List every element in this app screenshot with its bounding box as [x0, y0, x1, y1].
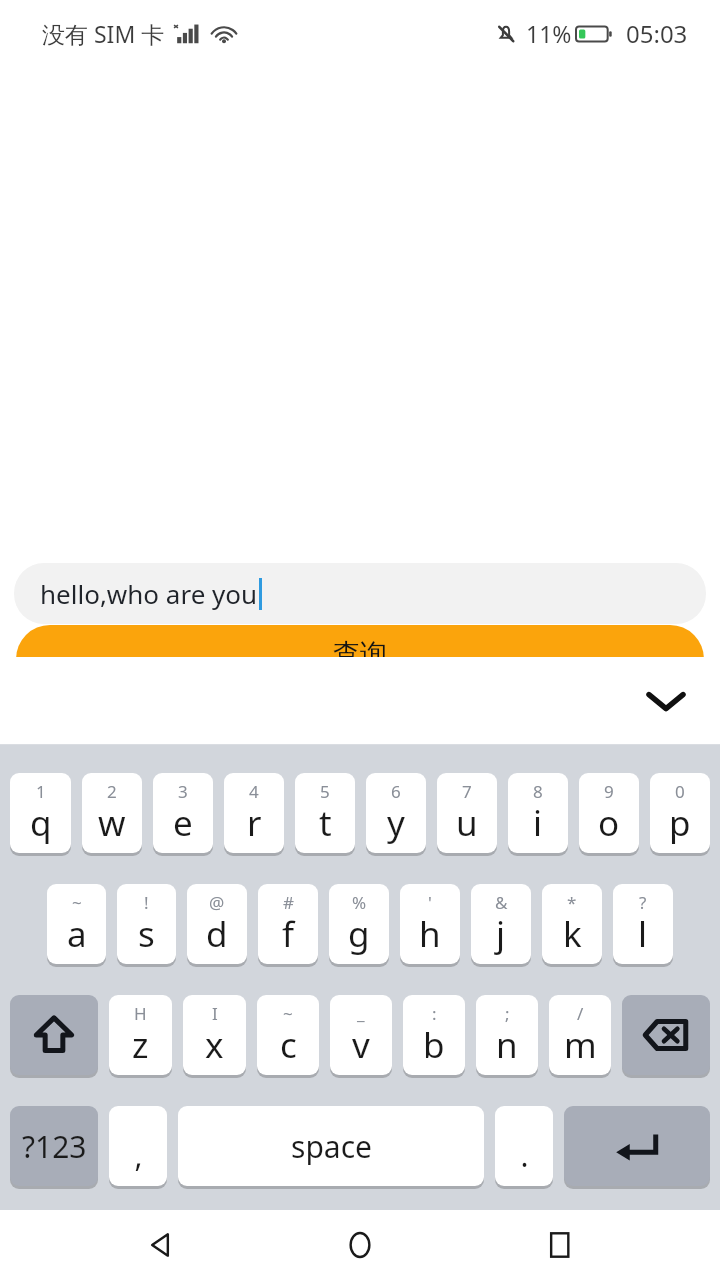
button[interactable]: 8	[508, 773, 568, 853]
button[interactable]: *	[542, 884, 602, 964]
button[interactable]: _	[330, 995, 392, 1075]
button[interactable]: Home	[320, 1210, 400, 1280]
staticText: s	[138, 910, 155, 958]
staticText: _	[357, 1002, 365, 1025]
staticText: I	[212, 1002, 218, 1025]
staticText: k	[563, 910, 582, 958]
staticText: r	[247, 799, 262, 847]
staticText: ?123	[22, 1126, 87, 1167]
button[interactable]: !	[117, 884, 176, 964]
staticText: c	[280, 1021, 297, 1069]
button[interactable]: 9	[579, 773, 639, 853]
button[interactable]: 1	[10, 773, 71, 853]
staticText: q	[30, 799, 52, 847]
button[interactable]: space	[178, 1106, 484, 1186]
staticText: :	[432, 1002, 437, 1025]
button[interactable]: Recents	[520, 1210, 600, 1280]
button[interactable]: Expand suggestions	[636, 671, 696, 731]
button[interactable]: ?123	[10, 1106, 98, 1186]
staticText: h	[419, 910, 441, 958]
button[interactable]: %	[329, 884, 389, 964]
button[interactable]: I	[183, 995, 246, 1075]
staticText: j	[496, 910, 506, 958]
staticText: '	[428, 891, 432, 914]
staticText: 没有 SIM 卡	[42, 18, 165, 49]
button[interactable]: 0	[650, 773, 710, 853]
staticText: ,	[134, 1135, 143, 1176]
staticText: t	[319, 799, 332, 847]
staticText: w	[98, 799, 126, 847]
staticText: 4	[249, 780, 259, 803]
staticText: d	[206, 910, 228, 958]
button[interactable]: Back	[120, 1210, 200, 1280]
staticText: y	[387, 799, 405, 847]
staticText: e	[173, 799, 193, 847]
staticText: 05:03	[626, 17, 688, 50]
button[interactable]: ?	[613, 884, 673, 964]
staticText: 8	[533, 780, 543, 803]
button[interactable]: /	[549, 995, 611, 1075]
staticText: n	[496, 1021, 518, 1069]
staticText: 11%	[526, 18, 572, 49]
button[interactable]: ~	[257, 995, 319, 1075]
staticText: u	[456, 799, 478, 847]
staticText: m	[564, 1021, 597, 1069]
staticText: 0	[675, 780, 685, 803]
staticText: 9	[604, 780, 614, 803]
button[interactable]: 2	[82, 773, 142, 853]
button[interactable]: hello,who are you	[14, 563, 706, 624]
staticText: !	[144, 891, 149, 914]
button[interactable]: 5	[295, 773, 355, 853]
button[interactable]: 6	[366, 773, 426, 853]
staticText: f	[282, 910, 295, 958]
button[interactable]: #	[258, 884, 318, 964]
staticText: ~	[283, 1002, 293, 1025]
staticText: b	[423, 1021, 445, 1069]
button[interactable]: 3	[153, 773, 213, 853]
staticText: 1	[36, 780, 46, 803]
button[interactable]: @	[187, 884, 247, 964]
staticText: #	[283, 891, 294, 914]
staticText: hello,who are you	[40, 576, 258, 611]
button[interactable]: ;	[476, 995, 538, 1075]
staticText: 查询	[333, 637, 387, 671]
button[interactable]: 4	[224, 773, 284, 853]
staticText: 2	[107, 780, 117, 803]
button[interactable]: :	[403, 995, 465, 1075]
staticText: 3	[178, 780, 188, 803]
staticText: v	[352, 1021, 370, 1069]
staticText: 5	[320, 780, 330, 803]
button[interactable]: Shift	[10, 995, 98, 1075]
staticText: /	[577, 1002, 584, 1025]
staticText: o	[598, 799, 620, 847]
staticText: z	[132, 1021, 149, 1069]
button[interactable]: '	[400, 884, 460, 964]
staticText: ;	[505, 1002, 510, 1025]
button[interactable]: 7	[437, 773, 497, 853]
staticText: ~	[72, 891, 82, 914]
staticText: 7	[462, 780, 472, 803]
staticText: *	[567, 891, 577, 914]
button[interactable]: &	[471, 884, 531, 964]
staticText: l	[638, 910, 648, 958]
button[interactable]: H	[109, 995, 172, 1075]
staticText: %	[352, 891, 367, 914]
staticText: 6	[391, 780, 401, 803]
staticText: space	[291, 1126, 372, 1167]
staticText: &	[495, 891, 508, 914]
staticText: @	[209, 891, 225, 914]
staticText: ?	[639, 891, 647, 914]
button[interactable]: ~	[47, 884, 106, 964]
button[interactable]: Backspace	[622, 995, 710, 1075]
button[interactable]: .	[495, 1106, 553, 1186]
staticText: i	[533, 799, 543, 847]
staticText: .	[520, 1135, 529, 1176]
button[interactable]: Enter	[564, 1106, 710, 1186]
staticText: x	[205, 1021, 224, 1069]
button[interactable]: ,	[109, 1106, 167, 1186]
staticText: g	[348, 910, 370, 958]
staticText: H	[134, 1002, 147, 1025]
staticText: p	[669, 799, 691, 847]
button[interactable]: 查询	[16, 625, 704, 705]
staticText: a	[67, 910, 87, 958]
